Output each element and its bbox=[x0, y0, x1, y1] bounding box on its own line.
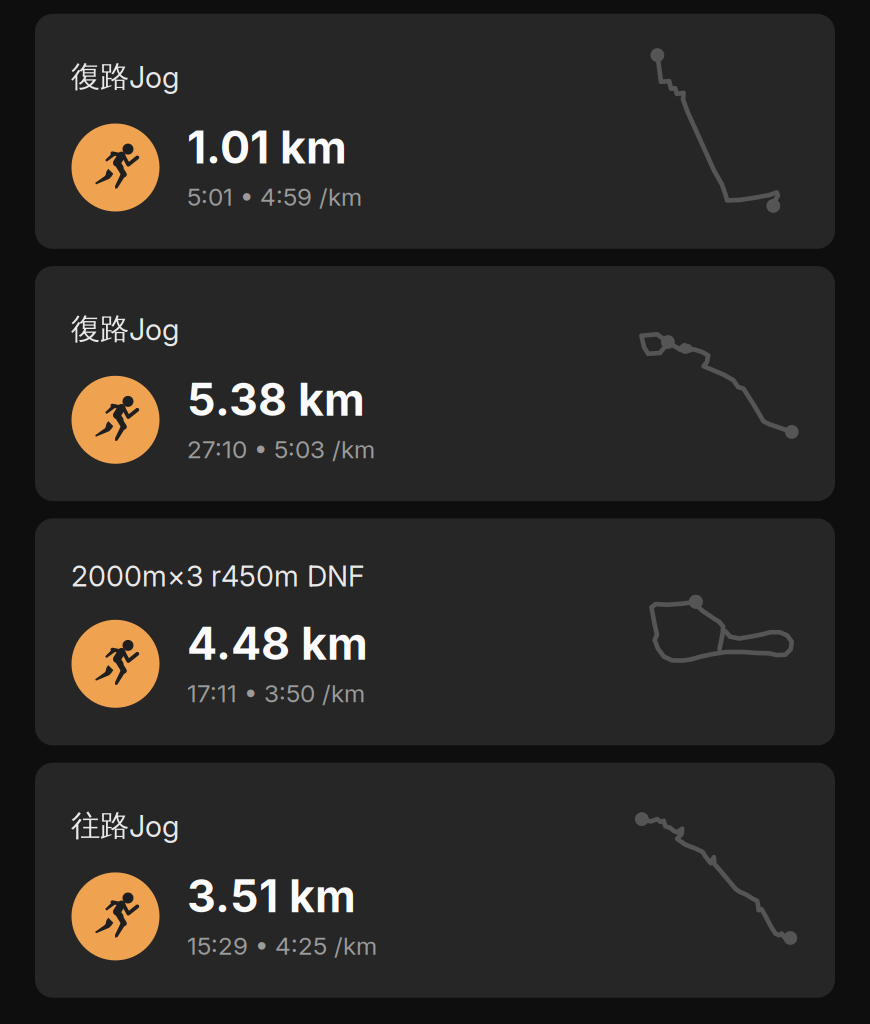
button[interactable]: 復路Jog bbox=[35, 14, 835, 249]
staticText: 4.48 km bbox=[187, 616, 368, 670]
staticText: 2000m×3 r450m DNF bbox=[71, 559, 364, 593]
staticText: 17:11 • 3:50 /km bbox=[187, 678, 365, 708]
staticText: 3.51 km bbox=[187, 869, 356, 923]
staticText: 15:29 • 4:25 /km bbox=[187, 931, 377, 961]
staticText: 27:10 • 5:03 /km bbox=[187, 434, 375, 464]
staticText: 復路Jog bbox=[71, 311, 179, 348]
staticText: 往路Jog bbox=[71, 807, 179, 844]
button[interactable]: 復路Jog bbox=[35, 266, 835, 501]
staticText: 5.38 km bbox=[187, 372, 365, 426]
button[interactable]: 往路Jog bbox=[35, 763, 835, 998]
staticText: 5:01 • 4:59 /km bbox=[187, 182, 362, 212]
staticText: 1.01 km bbox=[187, 120, 347, 174]
staticText: 復路Jog bbox=[71, 58, 179, 95]
button[interactable]: 2000m×3 r450m DNF bbox=[35, 518, 835, 745]
